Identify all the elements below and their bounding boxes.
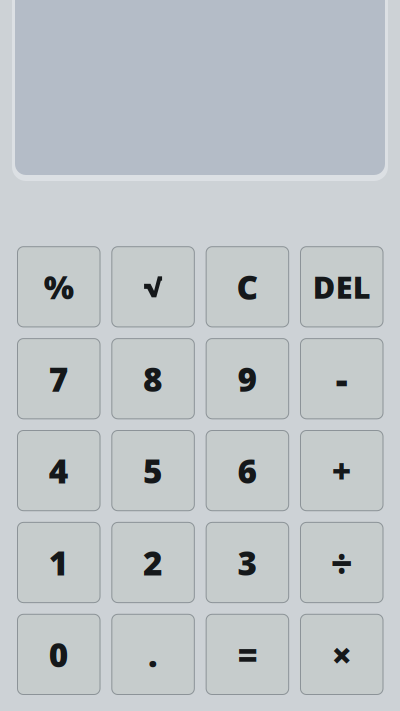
button[interactable]: Clear — [206, 246, 289, 327]
button[interactable]: Percent — [17, 246, 100, 327]
staticText: % — [44, 266, 74, 308]
staticText: × — [331, 630, 352, 678]
button[interactable]: 9 — [206, 338, 289, 419]
button[interactable]: Equals — [206, 614, 289, 695]
staticText: 8 — [143, 357, 163, 401]
button[interactable]: 8 — [111, 338, 195, 419]
button[interactable]: Square root — [111, 246, 195, 327]
staticText: - — [336, 354, 348, 403]
staticText: 3 — [237, 540, 257, 585]
button[interactable]: Delete — [300, 246, 383, 327]
button[interactable]: 2 — [111, 522, 195, 603]
button[interactable]: 4 — [17, 430, 100, 511]
button[interactable]: 3 — [206, 522, 289, 603]
button[interactable]: 1 — [17, 522, 100, 603]
button[interactable]: 7 — [17, 338, 100, 419]
staticText: C — [236, 265, 258, 309]
button[interactable]: 0 — [17, 614, 100, 695]
button[interactable]: Point — [111, 614, 195, 695]
staticText: 7 — [49, 357, 69, 401]
staticText: . — [148, 632, 158, 677]
staticText: 9 — [237, 357, 257, 401]
staticText: + — [332, 448, 352, 493]
button[interactable]: Divide — [300, 522, 383, 603]
staticText: 2 — [143, 540, 163, 585]
staticText: 6 — [237, 448, 257, 493]
button[interactable]: Multiply — [300, 614, 383, 695]
staticText: 5 — [143, 448, 163, 493]
button[interactable]: 5 — [111, 430, 195, 511]
staticText: 0 — [49, 632, 69, 677]
staticText: = — [237, 631, 257, 677]
staticText: ÷ — [331, 538, 353, 587]
staticText: DEL — [313, 266, 371, 307]
button[interactable]: 6 — [206, 430, 289, 511]
staticText: 4 — [49, 448, 69, 493]
staticText: 1 — [49, 540, 69, 585]
button[interactable]: Plus — [300, 430, 383, 511]
button[interactable]: Minus — [300, 338, 383, 419]
